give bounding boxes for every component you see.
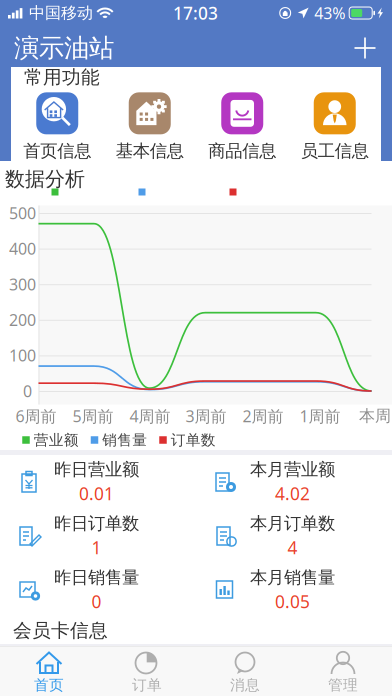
button[interactable]: Add (350, 33, 380, 63)
staticText: 0 (91, 590, 101, 613)
staticText: 管理 (328, 676, 358, 694)
staticText: 订单 (132, 676, 162, 694)
button[interactable]: 昨日销售量 (0, 567, 196, 613)
staticText: 中国移动 (29, 3, 93, 23)
staticText: 本月营业额 (250, 459, 335, 480)
staticText: 400 (9, 238, 36, 259)
staticText: 昨日销售量 (54, 567, 139, 588)
staticText: 商品信息 (208, 140, 276, 162)
button[interactable]: 员工信息 (288, 92, 381, 162)
staticText: 0.01 (79, 482, 114, 505)
staticText: 200 (9, 309, 36, 330)
staticText: 昨日营业额 (54, 459, 139, 480)
staticText: 4.02 (275, 482, 310, 505)
button[interactable]: 本月营业额 (196, 459, 392, 505)
button[interactable]: 首页信息 (11, 92, 103, 162)
staticText: 4周前 (129, 405, 170, 427)
staticText: 500 (9, 202, 36, 224)
staticText: 数据分析 (5, 167, 85, 191)
staticText: 员工信息 (301, 140, 369, 162)
staticText: 基本信息 (116, 140, 184, 162)
staticText: 0 (23, 380, 32, 402)
button[interactable]: 基本信息 (103, 92, 196, 162)
staticText: 2周前 (242, 405, 283, 427)
button[interactable]: 消息 (196, 645, 294, 696)
button[interactable]: 昨日订单数 (0, 513, 196, 559)
button[interactable]: 首页 (0, 645, 98, 696)
button[interactable]: 商品信息 (196, 92, 288, 162)
button[interactable]: 本月销售量 (196, 567, 392, 613)
staticText: 本周 (359, 406, 391, 426)
staticText: 演示油站 (14, 32, 114, 63)
staticText: 首页信息 (23, 140, 91, 162)
staticText: 首页 (34, 676, 64, 694)
staticText: 营业额 (34, 431, 79, 449)
staticText: 销售量 (102, 431, 147, 449)
staticText: 0.05 (275, 590, 310, 613)
staticText: 会员卡信息 (13, 619, 108, 642)
staticText: 本月订单数 (250, 513, 335, 534)
staticText: 5周前 (72, 405, 113, 427)
staticText: 昨日订单数 (54, 513, 139, 534)
staticText: 6周前 (15, 405, 56, 427)
button[interactable]: 本月订单数 (196, 513, 392, 559)
staticText: 100 (9, 345, 36, 366)
staticText: 订单数 (171, 431, 216, 449)
button[interactable]: 昨日营业额 (0, 459, 196, 505)
staticText: 300 (9, 274, 36, 295)
staticText: 3周前 (185, 405, 226, 427)
button[interactable]: 管理 (294, 645, 392, 696)
staticText: 常用功能 (24, 66, 100, 89)
staticText: 消息 (230, 676, 260, 694)
staticText: 1 (91, 536, 101, 559)
staticText: 17:03 (173, 1, 218, 24)
staticText: 4 (287, 536, 297, 559)
staticText: 43% (314, 2, 345, 24)
staticText: 本月销售量 (250, 567, 335, 588)
button[interactable]: 订单 (98, 645, 196, 696)
staticText: 1周前 (299, 405, 340, 427)
